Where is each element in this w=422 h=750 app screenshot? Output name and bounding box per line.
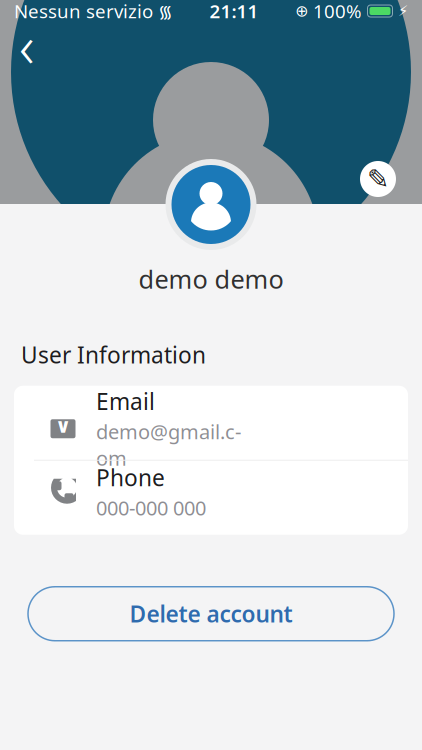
staticText: 100% — [308, 0, 367, 23]
staticText: User Information — [21, 340, 206, 370]
staticText: demo demo — [138, 262, 283, 296]
button[interactable]: Edit profile photo — [360, 161, 396, 197]
staticText: Phone — [96, 462, 165, 492]
staticText: Email — [96, 386, 155, 416]
staticText: ⊕ — [295, 2, 308, 20]
staticText: Delete account — [129, 599, 292, 629]
staticText: 21:11 — [209, 0, 258, 23]
button[interactable]: Back — [4, 22, 50, 68]
staticText: 000-000 000 — [96, 494, 206, 521]
staticText: Nessun servizio — [14, 0, 153, 23]
staticText: ∨ — [55, 414, 71, 437]
staticText: ‹ — [19, 6, 35, 84]
staticText: ⚡︎ — [393, 3, 408, 19]
button[interactable]: Delete account — [28, 587, 394, 641]
staticText: ✎ — [367, 164, 389, 194]
staticText: ᯾ — [153, 0, 173, 22]
staticText: demo@gmail.com — [96, 418, 241, 471]
